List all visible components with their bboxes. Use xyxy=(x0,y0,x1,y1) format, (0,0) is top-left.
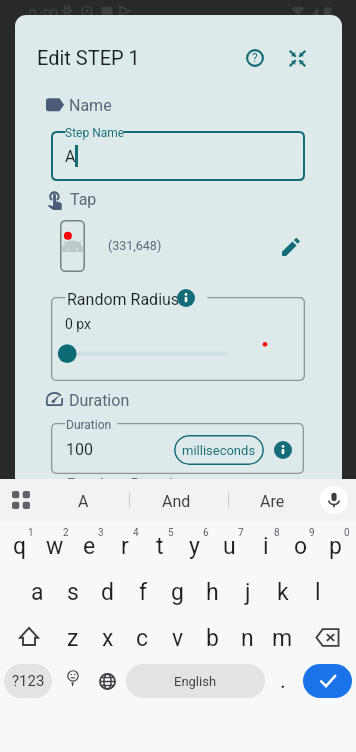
staticText: m xyxy=(272,625,293,652)
staticText: 0 px xyxy=(65,316,92,332)
staticText: 7 xyxy=(238,527,244,539)
staticText: t xyxy=(156,533,164,560)
staticText: 4 xyxy=(133,527,139,539)
staticText: g xyxy=(171,579,184,606)
staticText: ? xyxy=(252,51,258,65)
button[interactable]: r xyxy=(107,524,142,568)
staticText: 2 xyxy=(63,527,69,539)
staticText: Step Name xyxy=(65,126,125,140)
staticText: Name xyxy=(69,96,112,115)
button[interactable]: j xyxy=(230,570,265,614)
staticText: . xyxy=(280,668,286,694)
staticText: j xyxy=(245,579,251,606)
staticText: 1 xyxy=(28,527,34,539)
button[interactable]: i xyxy=(248,524,283,568)
button[interactable]: milliseconds xyxy=(174,435,264,465)
staticText: Random Radius xyxy=(67,290,180,309)
button[interactable]: y xyxy=(177,524,212,568)
staticText: ?123 xyxy=(12,672,45,690)
button[interactable]: t xyxy=(142,524,177,568)
button[interactable]: m xyxy=(265,616,300,660)
button[interactable]: Backspace xyxy=(309,615,345,659)
button[interactable]: f xyxy=(125,570,160,614)
staticText: Duration xyxy=(69,391,130,410)
button[interactable]: Shift xyxy=(11,614,47,658)
button[interactable]: q xyxy=(2,524,37,568)
button[interactable]: . xyxy=(266,664,300,698)
staticText: Are xyxy=(260,492,285,511)
button[interactable]: a xyxy=(20,570,55,614)
staticText: p xyxy=(329,533,342,560)
button[interactable]: c xyxy=(125,616,160,660)
button[interactable]: Emoji xyxy=(55,664,90,698)
button[interactable]: u xyxy=(212,524,247,568)
button[interactable]: ?123 xyxy=(4,664,52,698)
staticText: a xyxy=(31,579,44,606)
staticText: i xyxy=(263,533,269,560)
button[interactable]: Enter xyxy=(303,664,352,698)
staticText: w xyxy=(46,533,64,560)
button[interactable]: b xyxy=(195,616,230,660)
staticText: s xyxy=(67,579,79,606)
staticText: 0 xyxy=(344,527,350,539)
staticText: u xyxy=(223,533,236,560)
button[interactable]: Help xyxy=(236,39,274,77)
button[interactable]: Collapse xyxy=(279,40,316,77)
button[interactable]: Voice input xyxy=(320,486,348,514)
button[interactable]: k xyxy=(265,570,300,614)
staticText: k xyxy=(277,579,289,606)
button[interactable]: A xyxy=(43,480,123,522)
button[interactable]: l xyxy=(300,570,335,614)
button[interactable]: d xyxy=(90,570,125,614)
staticText: (331,648) xyxy=(108,238,162,253)
button[interactable]: p xyxy=(318,524,353,568)
button[interactable]: x xyxy=(90,616,125,660)
staticText: Edit STEP 1 xyxy=(37,46,140,69)
staticText: e xyxy=(83,533,96,560)
staticText: r xyxy=(121,533,129,560)
staticText: f xyxy=(139,579,147,606)
button[interactable]: English xyxy=(126,664,265,698)
button[interactable]: Change language xyxy=(90,664,125,698)
staticText: o xyxy=(294,533,308,560)
button[interactable]: v xyxy=(160,616,195,660)
staticText: 9 xyxy=(309,527,315,539)
staticText: n xyxy=(241,625,254,652)
button[interactable]: w xyxy=(37,524,72,568)
staticText: milliseconds xyxy=(182,443,256,458)
button[interactable]: h xyxy=(195,570,230,614)
staticText: 3 xyxy=(98,527,104,539)
staticText: z xyxy=(67,625,79,652)
button[interactable]: s xyxy=(55,570,90,614)
button[interactable]: e xyxy=(72,524,107,568)
staticText: A xyxy=(78,492,89,511)
staticText: 8 xyxy=(274,527,280,539)
staticText: 6 xyxy=(203,527,209,539)
staticText: 5 xyxy=(168,527,174,539)
button[interactable]: z xyxy=(55,616,90,660)
button[interactable]: And xyxy=(136,480,216,522)
button[interactable]: o xyxy=(283,524,318,568)
button[interactable]: Are xyxy=(232,480,312,522)
staticText: c xyxy=(136,625,149,652)
staticText: l xyxy=(315,579,321,606)
button[interactable]: Duration info xyxy=(274,441,292,459)
staticText: q xyxy=(13,533,27,560)
staticText: Tap xyxy=(70,190,97,209)
button[interactable]: n xyxy=(230,616,265,660)
staticText: Random Duration xyxy=(67,475,191,479)
staticText: y xyxy=(189,533,200,560)
button[interactable]: Edit tap coordinates xyxy=(269,225,313,269)
staticText: b xyxy=(206,625,219,652)
staticText: Duration xyxy=(66,418,112,432)
staticText: A xyxy=(65,147,76,166)
staticText: d xyxy=(101,579,114,606)
staticText: 100 xyxy=(66,440,93,459)
button[interactable]: Keyboard toolbar xyxy=(3,482,39,518)
staticText: And xyxy=(162,492,191,511)
staticText: v xyxy=(172,625,184,652)
staticText: h xyxy=(206,579,219,606)
staticText: English xyxy=(174,674,217,689)
button[interactable]: g xyxy=(160,570,195,614)
button[interactable]: Random radius info xyxy=(177,289,195,307)
